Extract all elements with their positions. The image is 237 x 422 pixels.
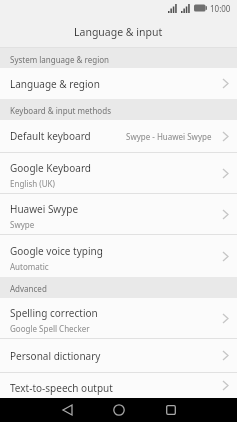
staticText: System language & region bbox=[10, 54, 109, 65]
staticText: 10:00 bbox=[210, 3, 231, 14]
staticText: Swype bbox=[10, 219, 35, 230]
staticText: Google Keyboard bbox=[10, 161, 91, 175]
button[interactable]: Huawei Swype bbox=[0, 194, 237, 234]
staticText: Language & input bbox=[74, 25, 163, 39]
staticText: Personal dictionary bbox=[10, 349, 101, 363]
button[interactable]: Language & region bbox=[0, 68, 237, 99]
staticText: Advanced bbox=[10, 283, 47, 294]
button[interactable] bbox=[93, 398, 145, 422]
button[interactable]: Google Keyboard bbox=[0, 153, 237, 193]
staticText: English (UK) bbox=[10, 178, 55, 189]
button[interactable]: Google voice typing bbox=[0, 235, 237, 277]
staticText: Huawei Swype bbox=[10, 202, 79, 216]
button[interactable]: Personal dictionary bbox=[0, 339, 237, 372]
staticText: Google voice typing bbox=[10, 244, 103, 258]
button[interactable]: Text-to-speech output bbox=[0, 373, 237, 398]
staticText: Default keyboard bbox=[10, 129, 91, 143]
staticText: Language & region bbox=[10, 77, 100, 91]
staticText: Spelling correction bbox=[10, 306, 98, 320]
staticText: Keyboard & input methods bbox=[10, 105, 111, 116]
button[interactable]: Spelling correction bbox=[0, 298, 237, 338]
staticText: Automatic bbox=[10, 261, 49, 272]
staticText: Google Spell Checker bbox=[10, 323, 90, 334]
button[interactable] bbox=[41, 398, 93, 422]
staticText: Swype - Huawei Swype bbox=[126, 131, 212, 142]
button[interactable] bbox=[145, 398, 197, 422]
button[interactable]: Default keyboard bbox=[0, 120, 237, 152]
staticText: Text-to-speech output bbox=[10, 381, 113, 395]
